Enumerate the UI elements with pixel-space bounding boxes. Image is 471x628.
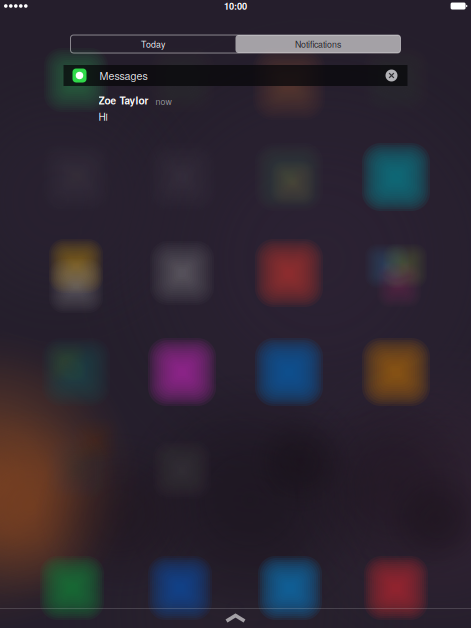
- staticText: 10:00: [224, 0, 247, 13]
- button[interactable]: Today: [70, 35, 235, 53]
- button[interactable]: Dismiss Messages notifications: [385, 69, 407, 81]
- staticText: now: [155, 95, 171, 107]
- staticText: Hi: [98, 109, 107, 123]
- staticText: Notifications: [295, 38, 341, 50]
- staticText: Messages: [99, 68, 147, 83]
- staticText: Today: [141, 38, 165, 50]
- button[interactable]: Notifications: [235, 35, 400, 53]
- button[interactable]: Close Notification Center: [224, 609, 246, 628]
- staticText: Zoe Taylor: [98, 93, 148, 107]
- button[interactable]: Zoe Taylor: [63, 86, 407, 118]
